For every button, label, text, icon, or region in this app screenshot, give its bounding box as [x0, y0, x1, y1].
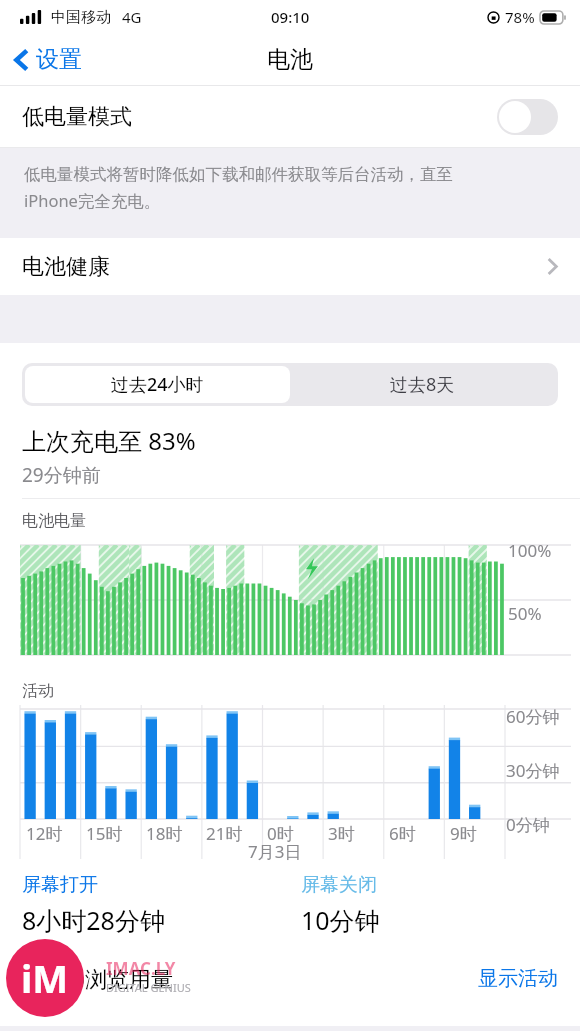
button[interactable]: 过去8天 — [290, 366, 555, 403]
staticText: 8小时28分钟 — [22, 903, 165, 937]
staticText: 中国移动 — [51, 8, 111, 27]
staticText: 0时 — [267, 822, 294, 845]
staticText: 15时 — [86, 822, 123, 845]
button[interactable]: 设置 — [0, 39, 92, 80]
staticText: 6时 — [389, 822, 416, 845]
staticText: DIGITAL GENIUS — [106, 980, 191, 995]
staticText: 活动 — [22, 681, 54, 701]
staticText: 30分钟 — [506, 759, 560, 782]
staticText: 0分钟 — [506, 813, 550, 836]
staticText: 18时 — [146, 822, 183, 845]
staticText: 21时 — [206, 822, 243, 845]
staticText: 09:10 — [271, 7, 310, 27]
staticText: 按App浏览用量 — [22, 963, 174, 993]
staticText: 低电量模式 — [22, 103, 132, 131]
button[interactable]: 屏幕关闭 — [301, 873, 580, 937]
button[interactable]: 低电量模式开关 — [497, 99, 558, 135]
staticText: iM — [21, 952, 69, 1004]
staticText: 过去24小时 — [111, 372, 204, 397]
staticText: 9时 — [450, 822, 477, 845]
staticText: 过去8天 — [390, 372, 455, 397]
staticText: 10分钟 — [301, 903, 380, 937]
staticText: 100% — [508, 539, 552, 562]
button[interactable]: 屏幕打开 — [22, 873, 301, 937]
staticText: 3时 — [328, 822, 355, 845]
staticText: 7月3日 — [248, 840, 302, 863]
button[interactable]: 电池健康 — [0, 238, 580, 295]
staticText: 显示活动 — [478, 966, 558, 991]
staticText: 12时 — [26, 822, 63, 845]
staticText: 电池健康 — [22, 253, 110, 281]
staticText: 29分钟前 — [22, 462, 101, 488]
staticText: 上次充电至 83% — [22, 424, 196, 457]
staticText: 电池 — [267, 45, 313, 74]
staticText: IMAC.LY — [106, 957, 176, 980]
staticText: 4G — [122, 7, 142, 27]
staticText: 屏幕关闭 — [301, 873, 377, 897]
button[interactable]: 低电量模式 — [0, 86, 580, 148]
staticText: 设置 — [36, 45, 82, 74]
staticText: 78% — [505, 7, 535, 27]
staticText: 50% — [508, 602, 542, 625]
staticText: 屏幕打开 — [22, 873, 98, 897]
staticText: 60分钟 — [506, 705, 560, 728]
button[interactable]: 过去24小时 — [25, 366, 290, 403]
staticText: 低电量模式将暂时降低如下载和邮件获取等后台活动，直至 — [24, 164, 453, 185]
staticText: iPhone完全充电。 — [24, 189, 161, 212]
staticText: 电池电量 — [22, 511, 86, 531]
